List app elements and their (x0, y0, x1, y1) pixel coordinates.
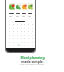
button[interactable] (28, 3, 33, 10)
staticText: Meal planning (20, 55, 45, 60)
staticText: made simple. (21, 59, 44, 64)
button[interactable] (9, 3, 15, 10)
button[interactable] (16, 3, 21, 10)
button[interactable] (22, 3, 27, 10)
staticText: Plan your week in minutes (20, 63, 44, 66)
